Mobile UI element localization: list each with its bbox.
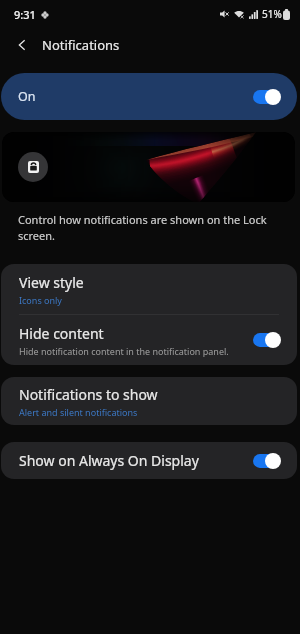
button[interactable]: Notifications to show — [1, 377, 297, 425]
button[interactable]: Show on Always On Display — [1, 442, 297, 479]
staticText: 51% — [262, 7, 282, 21]
staticText: On — [18, 88, 36, 105]
staticText: Icons only — [19, 294, 62, 306]
staticText: Notifications — [42, 36, 120, 54]
staticText: 9:31 — [14, 7, 36, 22]
button[interactable]: On — [1, 73, 297, 120]
staticText: Notifications to show — [19, 385, 158, 404]
button[interactable] — [2, 132, 295, 202]
button[interactable]: View style — [1, 264, 297, 314]
staticText: Alert and silent notifications — [19, 406, 138, 418]
staticText: Show on Always On Display — [19, 451, 245, 470]
staticText: View style — [19, 273, 84, 292]
button[interactable]: Back — [10, 33, 34, 57]
staticText: Hide notification content in the notific… — [19, 345, 229, 357]
button[interactable]: Toggle — [253, 332, 281, 348]
button[interactable]: Toggle — [253, 453, 281, 469]
staticText: Hide content — [19, 324, 104, 343]
staticText: Control how notifications are shown on t… — [18, 212, 274, 244]
button[interactable]: Toggle — [253, 89, 281, 105]
button[interactable]: Hide content — [1, 315, 297, 365]
